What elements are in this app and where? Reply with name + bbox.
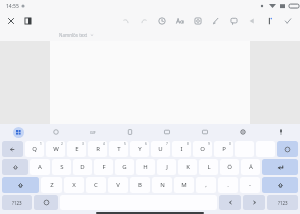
button[interactable]: Draw — [210, 15, 221, 26]
button[interactable]: A — [30, 159, 50, 175]
button[interactable]: B — [130, 177, 150, 193]
button[interactable]: Settings — [224, 124, 262, 140]
button[interactable]: Shift — [2, 177, 39, 193]
staticText: H — [143, 163, 148, 171]
button[interactable]: Namnlös text — [57, 32, 96, 38]
button[interactable]: Emoji — [277, 141, 298, 157]
staticText: J — [166, 163, 168, 171]
staticText: Ä — [249, 163, 253, 171]
staticText: Q — [32, 145, 37, 153]
button[interactable]: Z — [41, 177, 62, 193]
button[interactable]: Share — [246, 15, 257, 26]
staticText: X — [72, 181, 76, 189]
staticText: . — [227, 181, 229, 189]
button[interactable]: - — [240, 177, 260, 193]
staticText: F — [102, 163, 106, 171]
button[interactable]: P — [214, 141, 233, 157]
button[interactable]: Close — [5, 15, 16, 26]
button[interactable]: C — [86, 177, 106, 193]
staticText: 3 — [82, 142, 84, 146]
button[interactable]: Caps lock — [2, 159, 28, 175]
staticText: 0 — [229, 142, 231, 146]
staticText: M — [181, 181, 187, 189]
staticText: 5 — [124, 142, 126, 146]
button[interactable]: Voice — [37, 124, 74, 140]
button[interactable]: L — [199, 159, 218, 175]
button[interactable]: D — [73, 159, 92, 175]
staticText: - — [249, 181, 251, 189]
staticText: L — [207, 163, 211, 171]
staticText: ?123 — [12, 200, 22, 206]
button[interactable]: Undo — [120, 15, 131, 26]
staticText: Ö — [227, 163, 232, 171]
button[interactable]: J — [157, 159, 176, 175]
button[interactable]: V — [108, 177, 128, 193]
button[interactable]: Ö — [220, 159, 239, 175]
button[interactable]: S — [52, 159, 71, 175]
staticText: V — [116, 181, 120, 189]
staticText: Y — [138, 145, 142, 153]
staticText: C — [94, 181, 98, 189]
button[interactable]: M — [174, 177, 194, 193]
button[interactable]: , — [196, 177, 216, 193]
button[interactable]: Left — [219, 195, 241, 210]
staticText: T — [117, 145, 121, 153]
button[interactable]: Emoji picker — [34, 195, 58, 210]
button[interactable]: ?123 — [2, 195, 32, 210]
staticText: 1 — [40, 142, 42, 146]
button[interactable]: Insert image — [192, 15, 203, 26]
button[interactable]: R — [88, 141, 107, 157]
staticText: B — [138, 181, 142, 189]
staticText: S — [60, 163, 64, 171]
button[interactable]: Comment — [228, 15, 239, 26]
button[interactable]: O — [193, 141, 212, 157]
button[interactable]: Tab — [2, 141, 23, 157]
button[interactable]: Q — [25, 141, 44, 157]
button[interactable]: Y — [130, 141, 149, 157]
staticText: A — [38, 163, 42, 171]
button[interactable]: G — [115, 159, 134, 175]
staticText: GIF — [90, 130, 96, 135]
button[interactable]: Clipboard — [111, 124, 148, 140]
staticText: I — [180, 145, 183, 153]
staticText: R — [96, 145, 100, 153]
button[interactable]: X — [64, 177, 84, 193]
button[interactable]: Done — [282, 15, 293, 26]
staticText: D — [80, 163, 85, 171]
button[interactable]: Ä — [241, 159, 260, 175]
button[interactable]: Microphone — [262, 124, 300, 140]
button[interactable]: More options — [264, 15, 275, 26]
button[interactable]: F — [94, 159, 113, 175]
button[interactable]: K — [178, 159, 197, 175]
button[interactable]: Pages — [22, 15, 33, 26]
button[interactable]: H — [136, 159, 155, 175]
staticText: 6 — [145, 142, 147, 146]
staticText: , — [205, 181, 207, 189]
button[interactable]: Right — [243, 195, 265, 210]
button[interactable]: Redo — [138, 15, 149, 26]
button[interactable]: Enter — [262, 159, 298, 175]
button[interactable]: U — [151, 141, 170, 157]
button[interactable]: Sticker — [186, 124, 224, 140]
button[interactable]: GIF — [74, 124, 111, 140]
button[interactable]: W — [46, 141, 65, 157]
button[interactable]: Text format — [174, 15, 185, 26]
button[interactable]: Translate — [148, 124, 186, 140]
button[interactable]: T — [109, 141, 128, 157]
button[interactable]: I — [172, 141, 191, 157]
button[interactable]: Keyboard layouts — [0, 124, 37, 140]
staticText: 2 — [61, 142, 63, 146]
staticText: G — [122, 163, 127, 171]
staticText: K — [186, 163, 190, 171]
button[interactable]: ?123 — [267, 195, 298, 210]
button[interactable]: N — [152, 177, 172, 193]
button[interactable]: History — [156, 15, 167, 26]
button[interactable]: E — [67, 141, 86, 157]
staticText: Z — [50, 181, 54, 189]
staticText: 14:55 — [6, 3, 19, 10]
button[interactable]: Shift right — [262, 177, 298, 193]
